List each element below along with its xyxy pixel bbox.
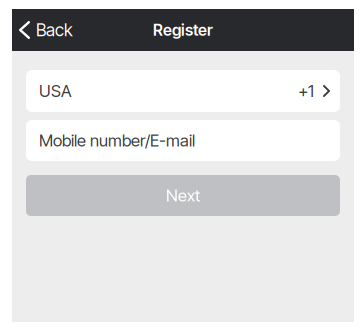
button[interactable]: Next — [26, 175, 340, 216]
staticText: Back — [36, 19, 73, 40]
staticText: Next — [166, 185, 200, 206]
staticText: USA — [39, 81, 71, 101]
button[interactable]: Back — [12, 9, 83, 51]
staticText: Register — [153, 20, 213, 40]
button[interactable]: USA — [26, 70, 340, 112]
staticText: +1 — [298, 81, 314, 101]
staticText: Mobile number/E-mail — [39, 130, 195, 151]
button[interactable]: Mobile number/E-mail — [26, 120, 340, 161]
